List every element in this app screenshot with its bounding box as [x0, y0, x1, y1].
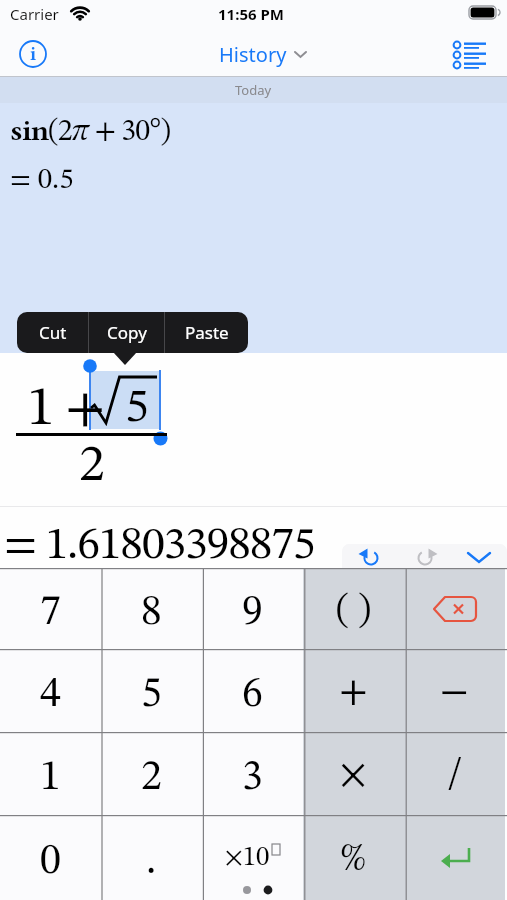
staticText: Copy — [107, 321, 147, 344]
staticText: − — [440, 673, 469, 713]
button[interactable] — [342, 544, 507, 568]
staticText: Today — [235, 81, 272, 99]
button[interactable]: ×10 — [202, 815, 303, 900]
button[interactable]: + — [303, 649, 404, 732]
staticText: History — [219, 41, 287, 68]
button[interactable]: × — [303, 732, 404, 815]
button[interactable]: − — [404, 649, 505, 732]
staticText: = 1.61803398875 — [4, 523, 315, 569]
staticText: ×10 — [225, 844, 270, 871]
button[interactable]: ( ) — [303, 568, 404, 649]
button[interactable]: 4 — [0, 649, 101, 732]
staticText: 2 — [79, 440, 105, 492]
button[interactable]: Cut — [17, 312, 88, 353]
button[interactable]: 9 — [202, 568, 303, 649]
staticText: i — [30, 43, 37, 65]
staticText: ( ) — [336, 592, 371, 630]
button[interactable]: 2 — [101, 732, 202, 815]
staticText: × — [340, 756, 367, 796]
button[interactable]: 7 — [0, 568, 101, 649]
staticText: sin(2π + 30°) — [10, 113, 170, 147]
button[interactable] — [404, 815, 505, 900]
staticText: 11:56 PM — [218, 4, 284, 24]
staticText: Cut — [39, 321, 67, 344]
button[interactable]: . — [101, 815, 202, 900]
button[interactable]: Today — [0, 77, 507, 353]
button[interactable]: 3 — [202, 732, 303, 815]
button[interactable]: Copy — [89, 312, 164, 353]
staticText: 2 — [141, 757, 162, 799]
staticText: / — [447, 756, 463, 796]
staticText: Carrier — [10, 4, 59, 24]
staticText: . — [146, 841, 157, 883]
button[interactable] — [452, 40, 488, 70]
staticText: % — [340, 841, 367, 879]
staticText: + — [339, 673, 368, 713]
staticText: = 0.5 — [10, 166, 74, 195]
button[interactable] — [404, 568, 505, 649]
staticText: 7 — [40, 592, 61, 634]
staticText: 9 — [242, 592, 263, 634]
button[interactable]: 6 — [202, 649, 303, 732]
button[interactable]: 8 — [101, 568, 202, 649]
staticText: 3 — [242, 757, 263, 799]
staticText: 8 — [141, 592, 162, 634]
staticText: Paste — [185, 321, 229, 344]
button[interactable]: 5 — [101, 649, 202, 732]
staticText: 5 — [125, 384, 149, 432]
button[interactable]: History — [219, 38, 307, 70]
staticText: 0 — [40, 841, 61, 883]
button[interactable]: 0 — [0, 815, 101, 900]
button[interactable]: Paste — [165, 312, 248, 353]
button[interactable]: i — [17, 38, 50, 71]
button[interactable]: / — [404, 732, 505, 815]
staticText: 1 + — [27, 381, 104, 437]
button[interactable]: 1 — [0, 732, 101, 815]
staticText: 6 — [242, 674, 263, 716]
button[interactable]: % — [303, 815, 404, 900]
staticText: 5 — [141, 674, 162, 716]
staticText: 1 — [40, 757, 61, 799]
staticText: 4 — [40, 674, 61, 716]
